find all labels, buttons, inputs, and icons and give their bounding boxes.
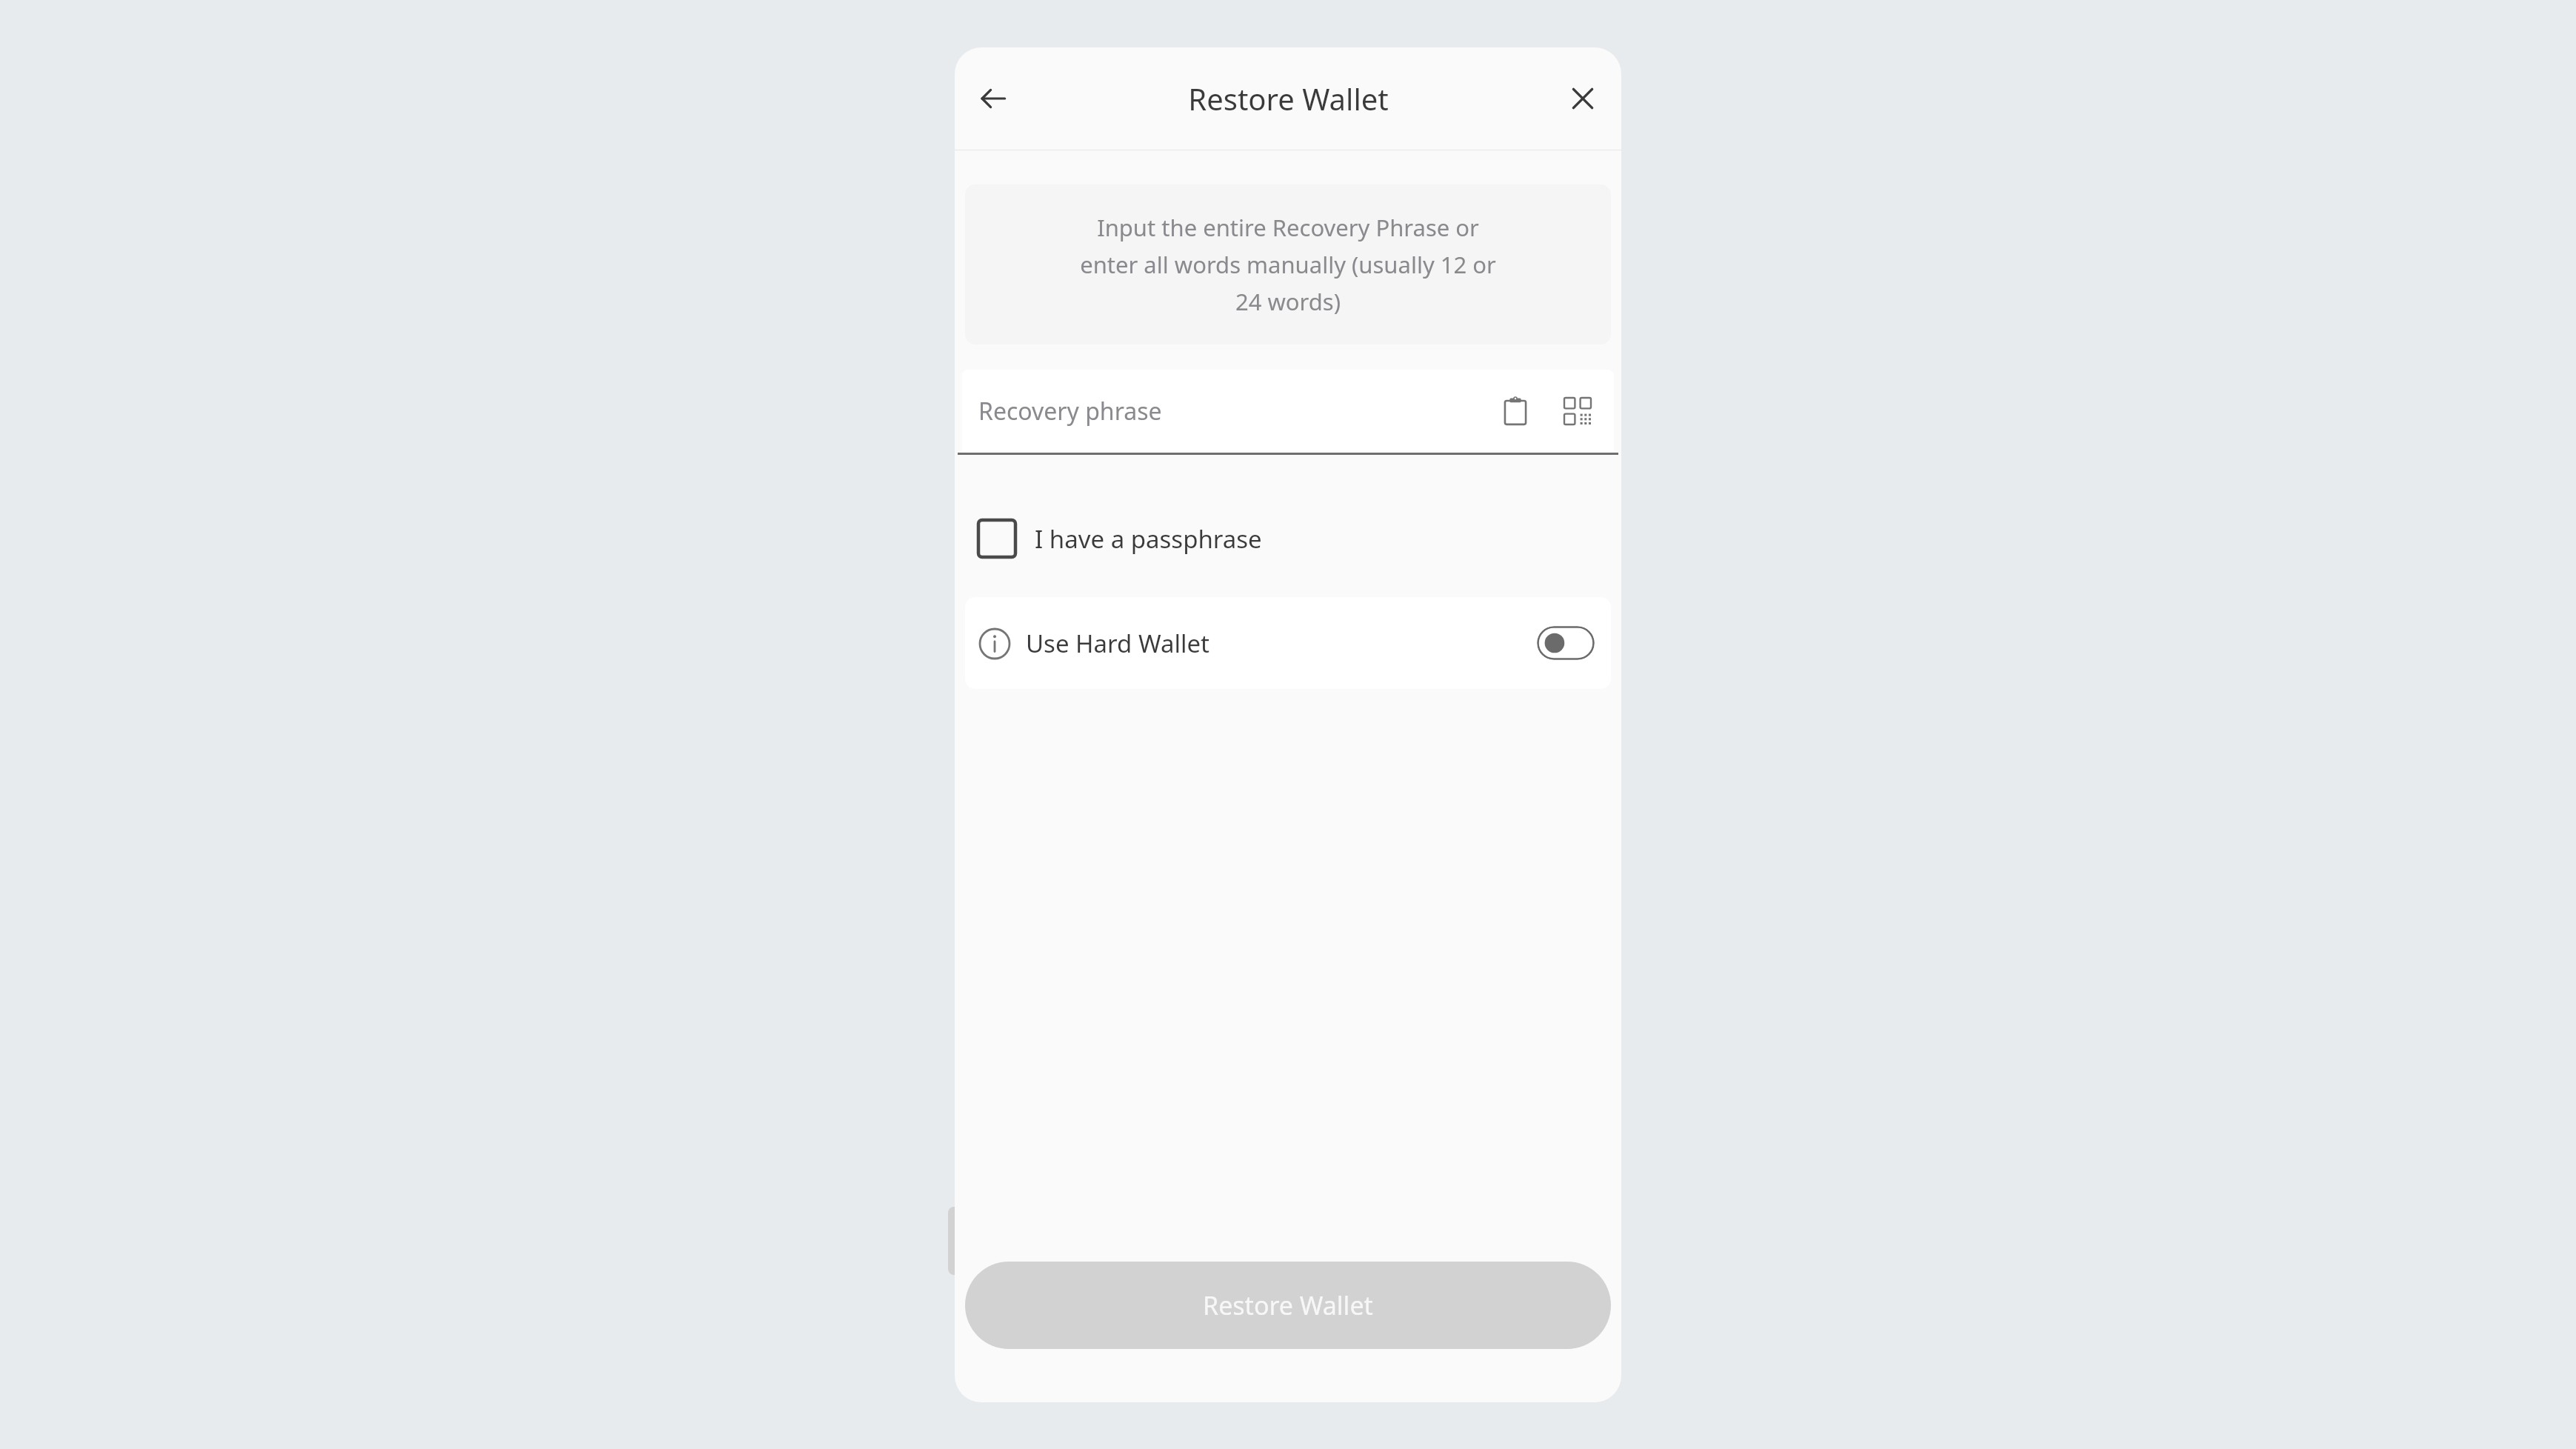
- button[interactable]: Scan QR code: [1552, 385, 1604, 437]
- button[interactable]: Restore Wallet: [965, 1262, 1611, 1349]
- staticText: Restore Wallet: [1203, 1288, 1373, 1322]
- staticText: Use Hard Wallet: [1026, 627, 1210, 660]
- button[interactable]: Close: [1556, 72, 1609, 125]
- staticText: Restore Wallet: [1188, 79, 1389, 119]
- staticText: Recovery phrase: [978, 395, 1162, 427]
- button[interactable]: Use Hard Wallet: [965, 597, 1611, 689]
- staticText: I have a passphrase: [1035, 522, 1262, 556]
- button[interactable]: Back: [967, 72, 1020, 125]
- button[interactable]: I have a passphrase: [955, 499, 1621, 578]
- staticText: Input the entire Recovery Phrase or ente…: [1080, 212, 1496, 317]
- button[interactable]: Recovery phrase: [962, 370, 1614, 453]
- button[interactable]: Paste from clipboard: [1489, 385, 1541, 437]
- button[interactable]: Use Hard Wallet toggle: [1537, 626, 1595, 660]
